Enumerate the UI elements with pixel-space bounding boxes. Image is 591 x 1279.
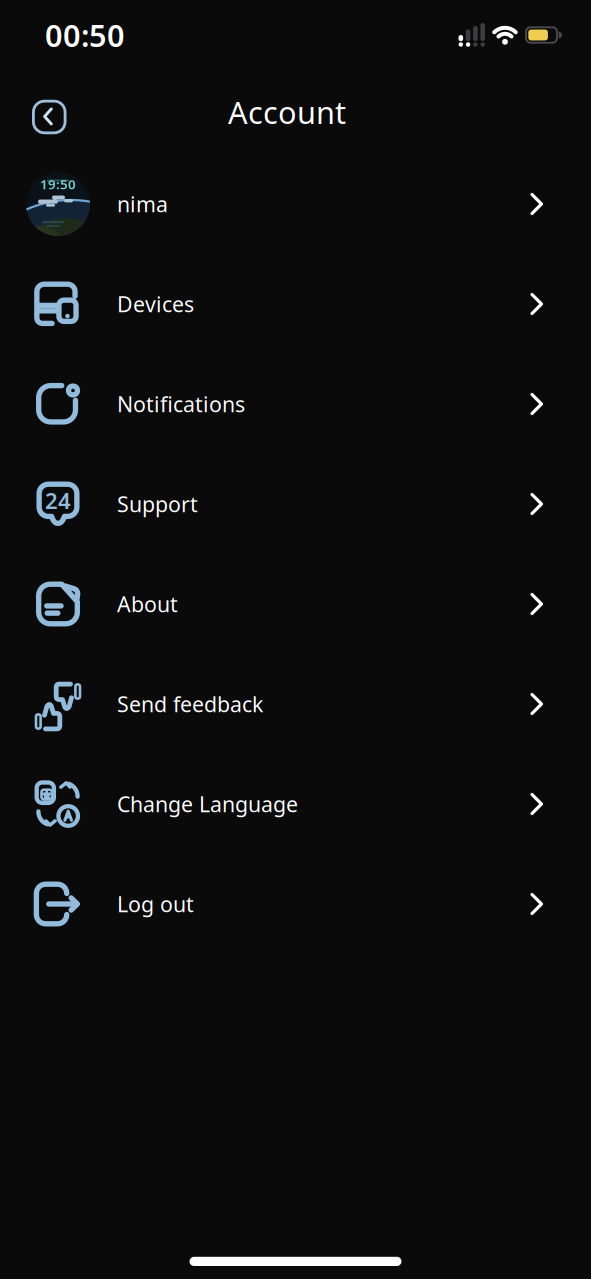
staticText: 24 <box>44 484 72 516</box>
button[interactable]: About <box>0 554 591 654</box>
button[interactable]: Log out <box>0 854 591 954</box>
staticText: nima <box>117 190 168 218</box>
button[interactable]: Devices <box>0 254 591 354</box>
button[interactable]: Change Language <box>0 754 591 854</box>
staticText: Log out <box>117 890 194 918</box>
staticText: 19:50 <box>40 175 76 193</box>
button[interactable]: Send feedback <box>0 654 591 754</box>
staticText: 00:50 <box>45 15 125 55</box>
button[interactable]: 24 <box>0 454 591 554</box>
staticText: Send feedback <box>117 690 263 718</box>
staticText: About <box>117 590 178 618</box>
button[interactable]: Notifications <box>0 354 591 454</box>
button[interactable]: 19:50 <box>0 154 591 254</box>
staticText: Support <box>117 490 198 518</box>
staticText: Change Language <box>117 790 298 818</box>
button[interactable]: Back <box>32 100 66 134</box>
staticText: Devices <box>117 290 194 318</box>
staticText: Notifications <box>117 390 245 418</box>
staticText: Account <box>228 92 346 132</box>
